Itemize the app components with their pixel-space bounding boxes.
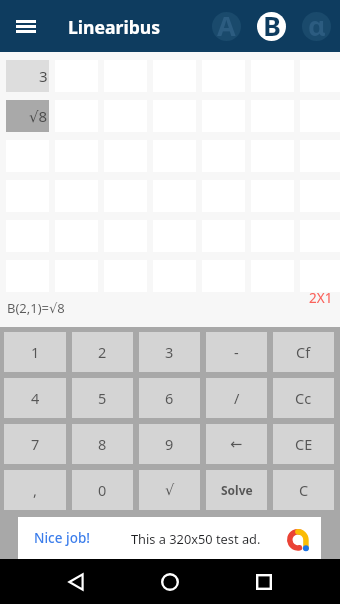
button[interactable]: 1 (4, 332, 66, 372)
button[interactable]: ← (206, 424, 267, 464)
staticText: 5 (98, 388, 107, 408)
staticText: 4 (31, 388, 40, 408)
staticText: 1 (31, 342, 40, 362)
staticText: 0 (98, 480, 107, 500)
staticText: 7 (31, 434, 40, 454)
button[interactable]: 3 (139, 332, 200, 372)
staticText: This a 320x50 test ad. (131, 530, 261, 547)
button[interactable]: C (273, 470, 334, 510)
button[interactable]: Back (58, 564, 94, 600)
button[interactable]: Matrix α (294, 3, 339, 49)
staticText: 6 (165, 388, 174, 408)
button[interactable]: CE (273, 424, 334, 464)
staticText: A (217, 7, 236, 44)
button[interactable]: Solve (206, 470, 267, 510)
staticText: α (308, 7, 326, 44)
button[interactable]: √8 (6, 100, 49, 132)
button[interactable]: Cc (273, 378, 334, 418)
staticText: 3 (165, 342, 174, 362)
staticText: - (234, 342, 239, 362)
staticText: 9 (165, 434, 174, 454)
staticText: Linearibus (68, 15, 161, 39)
button[interactable]: 0 (72, 470, 133, 510)
staticText: √ (165, 482, 175, 499)
button[interactable]: / (206, 378, 267, 418)
button[interactable]: , (4, 470, 66, 510)
staticText: C (299, 480, 309, 500)
button[interactable]: 4 (4, 378, 66, 418)
button[interactable]: √ (139, 470, 200, 510)
button[interactable]: Home (152, 564, 188, 600)
staticText: , (33, 480, 37, 500)
staticText: 8 (98, 434, 107, 454)
button[interactable]: - (206, 332, 267, 372)
button[interactable]: 5 (72, 378, 133, 418)
button[interactable]: 6 (139, 378, 200, 418)
button[interactable]: Cf (273, 332, 334, 372)
staticText: CE (295, 434, 313, 454)
button[interactable]: 2 (72, 332, 133, 372)
staticText: ← (230, 436, 243, 453)
staticText: √8 (29, 106, 48, 126)
button[interactable]: Nice job! (18, 517, 321, 559)
button[interactable]: 9 (139, 424, 200, 464)
button[interactable]: Matrix B (249, 3, 294, 49)
staticText: B(2,1)=√8 (7, 299, 65, 317)
staticText: / (234, 388, 240, 408)
staticText: Nice job! (34, 529, 90, 547)
button[interactable]: Recent apps (246, 564, 282, 600)
button[interactable]: Matrix A (204, 3, 249, 49)
staticText: Cf (296, 342, 311, 362)
staticText: Solve (221, 482, 253, 498)
staticText: 2X1 (309, 289, 333, 307)
button[interactable]: 7 (4, 424, 66, 464)
staticText: 3 (39, 66, 48, 86)
button[interactable]: 3 (6, 60, 49, 92)
staticText: B (263, 7, 281, 44)
button[interactable]: Open navigation menu (9, 9, 43, 43)
staticText: 2 (98, 342, 107, 362)
staticText: Cc (295, 388, 312, 408)
button[interactable]: 8 (72, 424, 133, 464)
